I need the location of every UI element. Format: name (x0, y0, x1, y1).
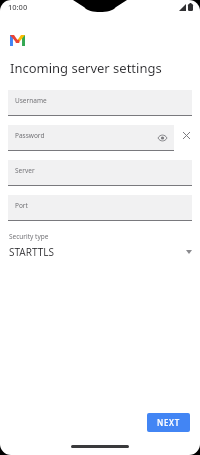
button[interactable]: Security type (9, 232, 192, 259)
button[interactable]: Username (8, 90, 192, 116)
button[interactable]: NEXT (147, 413, 190, 432)
button[interactable]: Show password (155, 131, 169, 145)
staticText: Security type (9, 232, 49, 241)
staticText: STARTTLS (9, 245, 186, 259)
staticText: Username (15, 96, 47, 105)
staticText: Incoming server settings (10, 59, 162, 77)
staticText: Password (15, 131, 45, 140)
staticText: 10:00 (8, 2, 28, 12)
staticText: Port (15, 201, 28, 210)
button[interactable]: Password (8, 125, 174, 151)
staticText: NEXT (157, 417, 180, 428)
staticText: Server (15, 166, 35, 175)
button[interactable]: Server (8, 160, 192, 186)
button[interactable]: Port (8, 195, 192, 221)
button[interactable]: Clear password (176, 125, 196, 145)
